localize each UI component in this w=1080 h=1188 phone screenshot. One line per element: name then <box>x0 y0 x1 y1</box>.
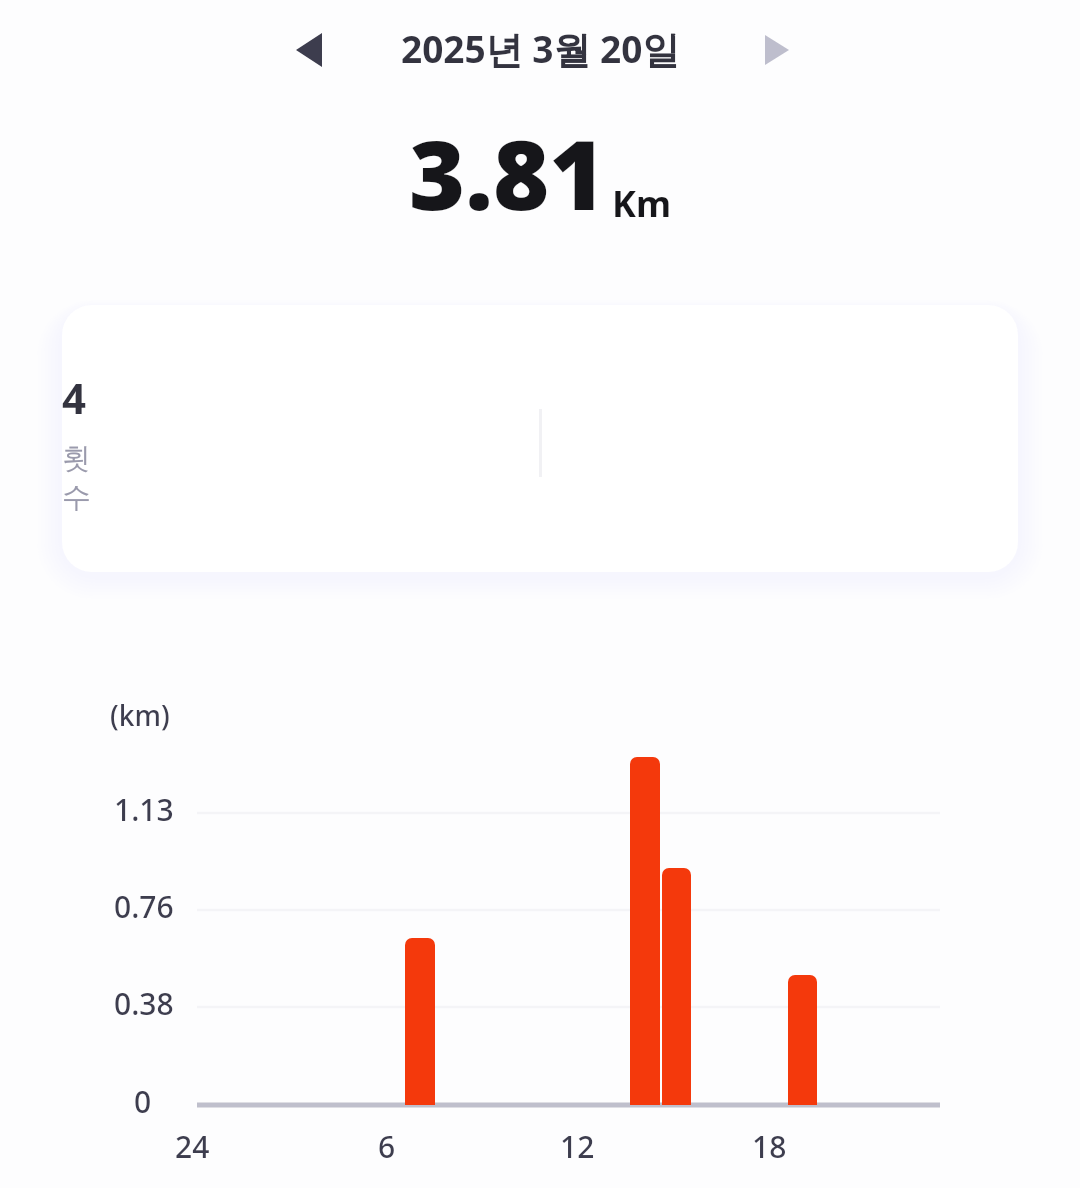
staticText: Km <box>612 179 672 228</box>
staticText: (km) <box>110 696 170 734</box>
staticText: 6 <box>378 1126 396 1167</box>
staticText: 18 <box>752 1126 787 1167</box>
staticText: 0.38 <box>114 983 174 1024</box>
staticText: 0.76 <box>114 886 174 927</box>
staticText: 2025년 3월 20일 <box>401 23 680 74</box>
button[interactable]: Previous day <box>277 19 341 81</box>
staticText: 12 <box>560 1126 595 1167</box>
staticText: 0 <box>134 1081 152 1122</box>
staticText: 24 <box>175 1126 210 1167</box>
staticText: 1.13 <box>114 789 174 830</box>
staticText: 3.81 <box>409 107 606 238</box>
button[interactable]: 2025년 3월 20일 <box>401 23 680 74</box>
button[interactable]: Next day <box>745 19 809 81</box>
